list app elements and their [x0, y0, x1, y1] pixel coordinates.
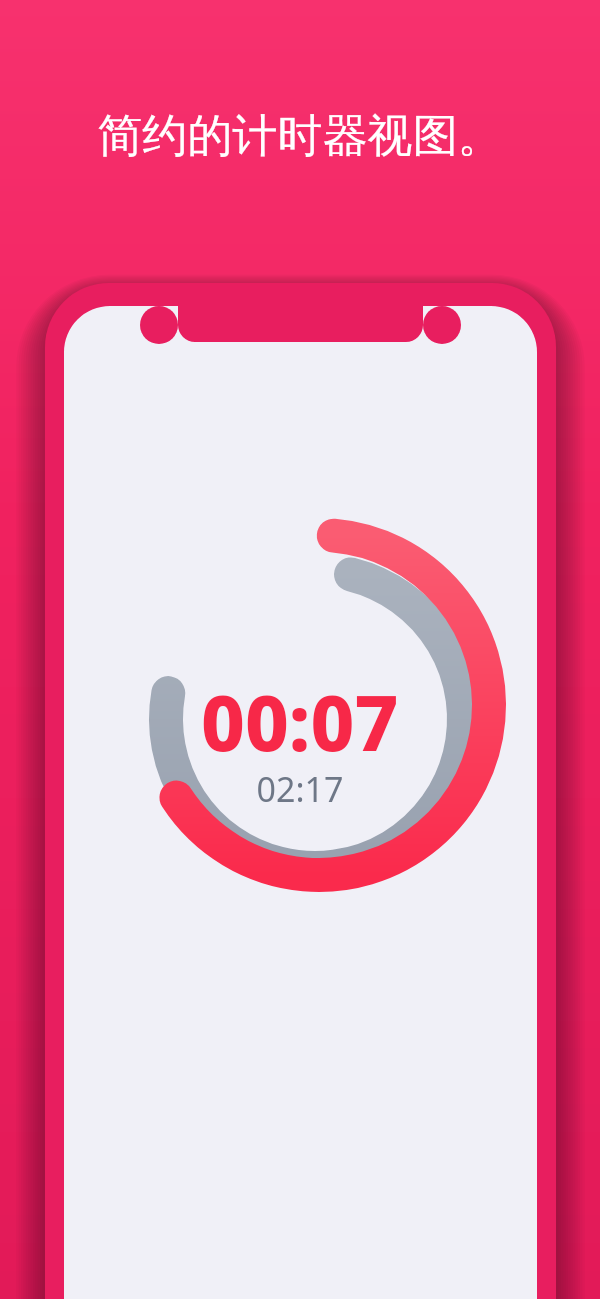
- button[interactable]: Timer 00:07 elapsed, 02:17 remaining: [0, 0, 600, 1299]
